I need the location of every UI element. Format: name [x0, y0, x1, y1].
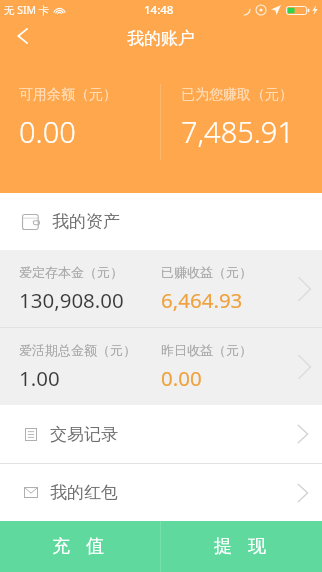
staticText: 6,464.93 [161, 286, 243, 314]
button[interactable]: 充值 [0, 521, 160, 572]
staticText: 7,485.91 [181, 112, 294, 151]
button[interactable]: 交易记录 [0, 405, 322, 463]
staticText: 14:48 [144, 2, 174, 18]
staticText: 交易记录 [50, 424, 118, 445]
staticText: 可用余额（元） [19, 86, 117, 104]
staticText: 130,908.00 [19, 286, 124, 314]
staticText: 0.00 [161, 364, 202, 392]
button[interactable]: 提现 [161, 521, 322, 572]
button[interactable]: 我的红包 [0, 464, 322, 521]
button[interactable]: 爱定存本金（元） [0, 250, 322, 327]
button[interactable]: 爱活期总金额（元） [0, 328, 322, 405]
staticText: 我的账户 [127, 28, 195, 49]
button[interactable]: Back [0, 20, 42, 56]
staticText: 我的红包 [50, 482, 118, 503]
button[interactable]: 我的资产 [0, 193, 322, 250]
staticText: 已为您赚取（元） [181, 86, 293, 104]
staticText: 1.00 [19, 364, 60, 392]
staticText: 无 SIM 卡 [4, 3, 50, 17]
staticText: 0.00 [19, 112, 76, 151]
staticText: 爱定存本金（元） [19, 264, 123, 280]
staticText: 昨日收益（元） [161, 342, 252, 358]
staticText: 充值 [44, 535, 112, 558]
staticText: 我的资产 [52, 211, 120, 232]
staticText: 爱活期总金额（元） [19, 342, 136, 358]
staticText: 已赚收益（元） [161, 264, 252, 280]
staticText: 提现 [206, 535, 274, 558]
